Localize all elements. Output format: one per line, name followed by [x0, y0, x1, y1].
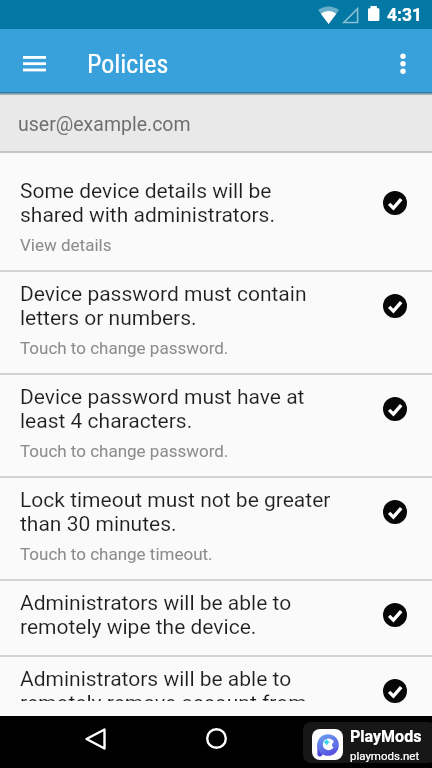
staticText: Lock timeout must not be greater than 30…	[20, 488, 331, 536]
staticText: Administrators will be able to remotely …	[20, 591, 292, 639]
staticText: View details	[20, 235, 112, 255]
staticText: Some device details will be shared with …	[20, 179, 275, 227]
staticText: Administrators will be able to remotely …	[20, 667, 307, 701]
staticText: Touch to change password.	[20, 338, 229, 358]
staticText: Device password must contain letters or …	[20, 282, 307, 330]
staticText: 4:31	[387, 5, 423, 26]
staticText: user@example.com	[18, 113, 191, 136]
staticText: PlayMods	[350, 727, 422, 746]
staticText: Touch to change password.	[20, 441, 229, 461]
staticText: Device password must have at least 4 cha…	[20, 385, 305, 433]
staticText: Touch to change timeout.	[20, 544, 213, 564]
staticText: playmods.net	[350, 749, 420, 762]
staticText: Policies	[87, 49, 169, 79]
